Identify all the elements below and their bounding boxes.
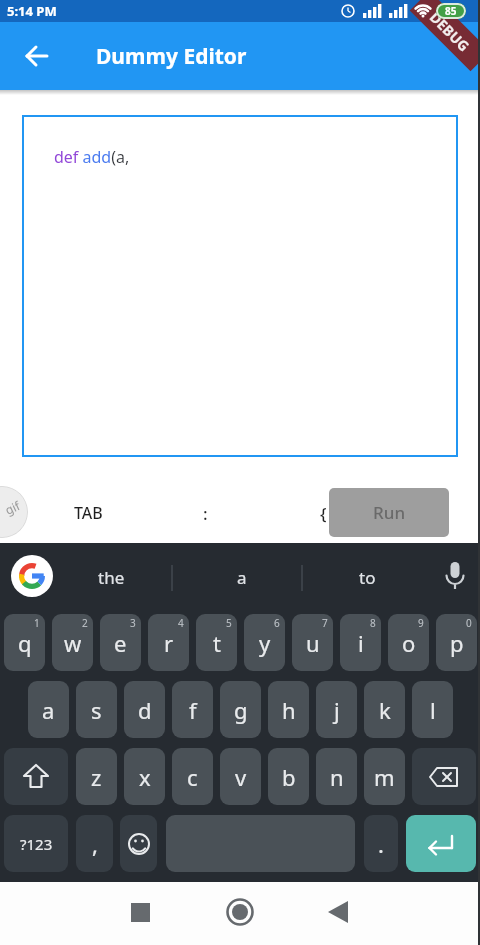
button[interactable] [120, 815, 157, 872]
button[interactable] [412, 748, 476, 805]
button[interactable]: , [76, 815, 113, 872]
staticText: o [402, 628, 416, 658]
button[interactable]: Run [329, 488, 449, 537]
button[interactable]: x [124, 748, 165, 805]
staticText: Run [373, 501, 406, 524]
staticText: to [359, 566, 376, 589]
button[interactable]: : [181, 491, 229, 535]
button[interactable]: u [292, 614, 333, 671]
staticText: gif [2, 497, 23, 518]
button[interactable]: w [52, 614, 93, 671]
staticText: , [92, 829, 98, 859]
staticText: j [334, 695, 340, 725]
button[interactable] [118, 890, 162, 934]
staticText: c [187, 762, 198, 792]
button[interactable]: n [316, 748, 357, 805]
staticText: s [91, 695, 102, 725]
staticText: a [237, 566, 247, 589]
staticText: p [450, 628, 464, 658]
staticText: 2 [82, 616, 88, 630]
button[interactable]: def add(a, [22, 115, 458, 457]
staticText: DEBUG [426, 8, 474, 56]
staticText: v [235, 762, 247, 792]
staticText: k [379, 695, 391, 725]
staticText: { [320, 502, 327, 525]
button[interactable] [406, 815, 476, 872]
button[interactable]: q [4, 614, 45, 671]
button[interactable]: d [124, 681, 165, 738]
staticText: def add(a, [54, 146, 130, 168]
staticText: 5 [226, 616, 232, 630]
staticText: TAB [74, 502, 103, 524]
button[interactable] [4, 748, 68, 805]
staticText: x [139, 762, 151, 792]
staticText: r [164, 628, 174, 658]
button[interactable]: b [268, 748, 309, 805]
staticText: 3 [130, 616, 136, 630]
staticText: 6 [274, 616, 280, 630]
button[interactable] [14, 33, 60, 79]
button[interactable] [166, 815, 355, 872]
staticText: Dummy Editor [96, 42, 247, 71]
button[interactable]: j [316, 681, 357, 738]
button[interactable]: ?123 [4, 815, 68, 872]
staticText: l [430, 695, 436, 725]
staticText: 7 [322, 616, 328, 630]
button[interactable]: m [364, 748, 405, 805]
staticText: 0 [466, 616, 472, 630]
button[interactable]: to [338, 543, 396, 612]
button[interactable]: c [172, 748, 213, 805]
button[interactable]: { [299, 491, 347, 535]
button[interactable] [316, 890, 360, 934]
button[interactable] [218, 890, 262, 934]
staticText: f [189, 695, 197, 725]
staticText: b [282, 762, 296, 792]
button[interactable]: e [100, 614, 141, 671]
button[interactable]: r [148, 614, 189, 671]
button[interactable]: g [220, 681, 261, 738]
staticText: q [18, 628, 32, 658]
staticText: d [138, 695, 152, 725]
button[interactable]: l [412, 681, 453, 738]
button[interactable]: a [213, 543, 271, 612]
button[interactable]: t [196, 614, 237, 671]
button[interactable] [11, 555, 53, 597]
button[interactable]: p [436, 614, 477, 671]
button[interactable]: TAB [64, 491, 112, 535]
staticText: . [378, 829, 384, 859]
staticText: i [358, 628, 364, 658]
staticText: t [213, 628, 221, 658]
staticText: a [42, 695, 55, 725]
staticText: e [114, 628, 127, 658]
staticText: : [203, 502, 208, 525]
button[interactable]: a [28, 681, 69, 738]
button[interactable]: h [268, 681, 309, 738]
button[interactable]: f [172, 681, 213, 738]
staticText: ?123 [20, 834, 53, 854]
staticText: n [330, 762, 344, 792]
staticText: z [91, 762, 102, 792]
staticText: w [64, 628, 82, 658]
button[interactable]: gif [0, 486, 28, 538]
staticText: 5:14 PM [7, 2, 57, 20]
staticText: 9 [418, 616, 424, 630]
button[interactable]: o [388, 614, 429, 671]
button[interactable]: i [340, 614, 381, 671]
button[interactable]: v [220, 748, 261, 805]
staticText: 85 [445, 4, 457, 18]
button[interactable]: the [82, 543, 140, 612]
staticText: 4 [178, 616, 184, 630]
button[interactable]: z [76, 748, 117, 805]
staticText: y [259, 628, 271, 658]
staticText: g [234, 695, 248, 725]
staticText: the [98, 566, 125, 589]
staticText: 8 [370, 616, 376, 630]
button[interactable]: s [76, 681, 117, 738]
staticText: u [306, 628, 320, 658]
button[interactable]: y [244, 614, 285, 671]
staticText: h [282, 695, 296, 725]
button[interactable]: k [364, 681, 405, 738]
staticText: m [374, 762, 395, 792]
button[interactable]: . [364, 815, 398, 872]
staticText: 1 [34, 616, 40, 630]
